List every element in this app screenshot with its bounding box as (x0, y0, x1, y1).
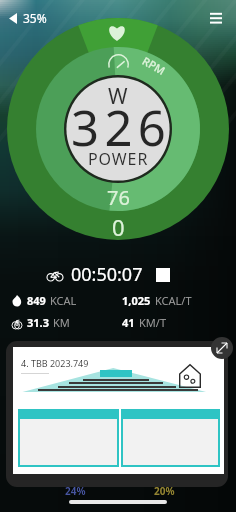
staticText: RPM (140, 53, 168, 78)
staticText: 326 (71, 94, 172, 161)
staticText: KCAL (50, 293, 77, 308)
staticText: 4. TBB 2023.749 (21, 357, 89, 369)
staticText: 35% (23, 10, 47, 26)
button[interactable]: 35% (7, 9, 49, 27)
staticText: W (108, 82, 128, 111)
staticText: 00:50:07 (71, 262, 143, 287)
staticText: 0 (112, 212, 125, 242)
staticText: 20% (154, 484, 175, 498)
other: Cadence (108, 54, 129, 69)
staticText: 76 (107, 184, 130, 211)
staticText: 849 (27, 293, 46, 308)
staticText: KCAL/T (155, 293, 192, 308)
button[interactable]: Expand (211, 337, 233, 359)
button[interactable] (6, 341, 228, 487)
other: Heart rate (107, 24, 127, 41)
staticText: POWER (88, 148, 149, 170)
staticText: KM (53, 315, 70, 330)
staticText: 1,025 (122, 293, 151, 308)
button[interactable]: Menu (206, 8, 226, 28)
staticText: 31.3 (27, 315, 49, 330)
staticText: 41 (122, 315, 135, 330)
staticText: 24% (65, 484, 86, 498)
staticText: KM/T (139, 315, 166, 330)
